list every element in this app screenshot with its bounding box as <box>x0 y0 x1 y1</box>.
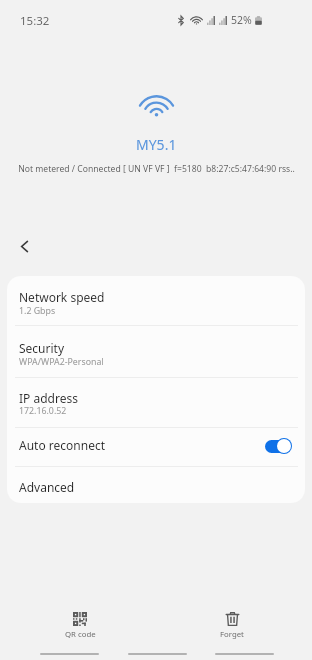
staticText: 52% <box>231 13 252 27</box>
staticText: MY5.1 <box>136 135 177 154</box>
staticText: IP address <box>19 390 78 406</box>
staticText: WPA/WPA2-Personal <box>19 356 104 368</box>
button[interactable]: QR code <box>40 607 120 645</box>
button[interactable]: Forget <box>192 607 272 645</box>
staticText: Not metered / Connected [ UN VF VF ] f=5… <box>18 163 295 175</box>
staticText: Network speed <box>19 289 105 305</box>
staticText: Security <box>19 340 65 356</box>
button[interactable]: Auto reconnect <box>7 428 305 467</box>
button[interactable]: Advanced <box>7 467 305 503</box>
button[interactable]: IP address <box>7 378 305 428</box>
staticText: 172.16.0.52 <box>19 405 67 417</box>
button[interactable]: Network speed <box>7 276 305 326</box>
staticText: 15:32 <box>20 13 50 29</box>
button[interactable]: Back <box>8 230 40 262</box>
staticText: QR code <box>65 629 96 640</box>
staticText: Advanced <box>19 479 75 495</box>
button[interactable]: Security <box>7 326 305 378</box>
staticText: Forget <box>220 629 244 640</box>
staticText: 1.2 Gbps <box>19 305 56 317</box>
staticText: Auto reconnect <box>19 437 105 453</box>
